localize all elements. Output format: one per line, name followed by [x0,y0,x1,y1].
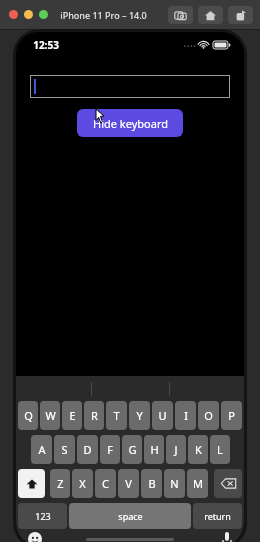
button[interactable]: V [118,469,139,498]
button[interactable]: D [77,435,98,464]
button[interactable]: E [62,401,82,430]
staticText: return [204,510,231,522]
button[interactable]: A [31,435,52,464]
button[interactable]: N [164,469,185,498]
button[interactable]: return [193,503,242,529]
staticText: Q [24,408,33,423]
button[interactable]: Backspace [214,469,242,498]
staticText: Z [57,476,64,491]
button[interactable]: space [69,503,191,529]
staticText: space [118,510,143,522]
staticText: V [125,476,132,491]
button[interactable]: I [175,401,196,430]
staticText: G [128,442,137,457]
button[interactable]: Z [50,469,70,498]
staticText: N [170,476,179,491]
staticText: U [158,408,167,423]
button[interactable]: Shift [18,469,45,498]
button[interactable]: 123 [18,503,67,529]
staticText: M [193,476,203,491]
staticText: T [113,408,120,423]
staticText: H [150,442,159,457]
button[interactable]: K [188,435,208,464]
button[interactable]: C [95,469,116,498]
button[interactable]: J [166,435,186,464]
button[interactable]: Rotate [228,6,253,24]
button[interactable]: H [144,435,164,464]
staticText: 12:53 [33,38,59,52]
button[interactable]: X [72,469,93,498]
staticText: F [107,442,113,457]
button[interactable]: W [40,401,60,430]
staticText: P [228,408,235,423]
staticText: W [45,408,56,423]
staticText: D [83,442,92,457]
staticText: iPhone 11 Pro – 14.0 [60,9,147,21]
button[interactable]: R [84,401,104,430]
button[interactable]: Emoji [28,532,42,542]
button[interactable]: P [221,401,242,430]
staticText: J [174,442,178,457]
staticText: Hide keyboard [93,116,168,131]
button[interactable]: M [187,469,208,498]
staticText: 123 [35,510,51,522]
staticText: I [184,408,188,423]
button[interactable]: T [106,401,127,430]
button[interactable]: U [152,401,173,430]
staticText: A [38,442,46,457]
button[interactable] [30,75,230,98]
button[interactable]: Hide keyboard [77,109,183,137]
button[interactable]: F [100,435,120,464]
staticText: K [195,442,202,457]
staticText: X [79,476,86,491]
staticText: R [91,408,98,423]
staticText: S [61,442,68,457]
button[interactable]: Y [129,401,150,430]
button[interactable]: L [210,435,230,464]
staticText: E [69,408,76,423]
button[interactable]: B [141,469,162,498]
staticText: C [102,476,109,491]
button[interactable]: O [198,401,219,430]
button[interactable]: Dictation [222,532,232,542]
button[interactable]: Q [18,401,38,430]
staticText: L [217,442,223,457]
staticText: Y [136,408,143,423]
staticText: O [204,408,213,423]
button[interactable]: Screenshot [168,6,193,24]
button[interactable]: S [54,435,75,464]
staticText: B [148,476,156,491]
button[interactable]: G [122,435,142,464]
button[interactable]: Home [198,6,223,24]
